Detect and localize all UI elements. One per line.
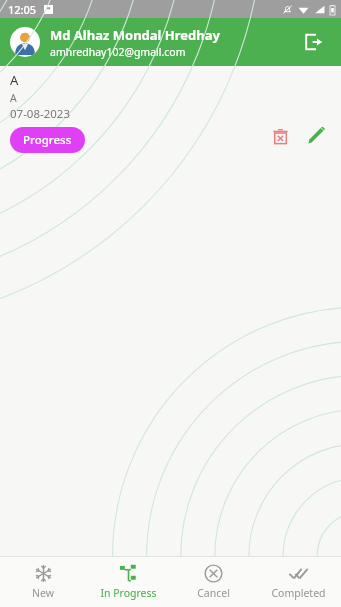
button[interactable]: A xyxy=(0,66,341,153)
button[interactable]: Logout xyxy=(295,24,331,60)
button[interactable]: New xyxy=(0,557,86,607)
staticText: 12:05 xyxy=(8,2,37,17)
staticText: amhredhay102@gmail.com xyxy=(50,45,186,59)
button[interactable]: Progress xyxy=(10,127,85,153)
button[interactable]: Cancel xyxy=(171,557,256,607)
staticText: Completed xyxy=(271,586,326,600)
staticText: In Progress xyxy=(100,586,157,600)
staticText: Cancel xyxy=(197,586,230,600)
staticText: A xyxy=(10,71,19,89)
button[interactable]: Completed xyxy=(256,557,341,607)
button[interactable]: Delete xyxy=(265,121,295,151)
button[interactable]: Edit xyxy=(301,121,331,151)
staticText: Md Alhaz Mondal Hredhay xyxy=(50,26,220,44)
staticText: New xyxy=(32,586,54,600)
staticText: Progress xyxy=(23,132,72,148)
staticText: 07-08-2023 xyxy=(10,106,71,122)
button[interactable]: In Progress xyxy=(86,557,171,607)
staticText: A xyxy=(10,91,17,105)
